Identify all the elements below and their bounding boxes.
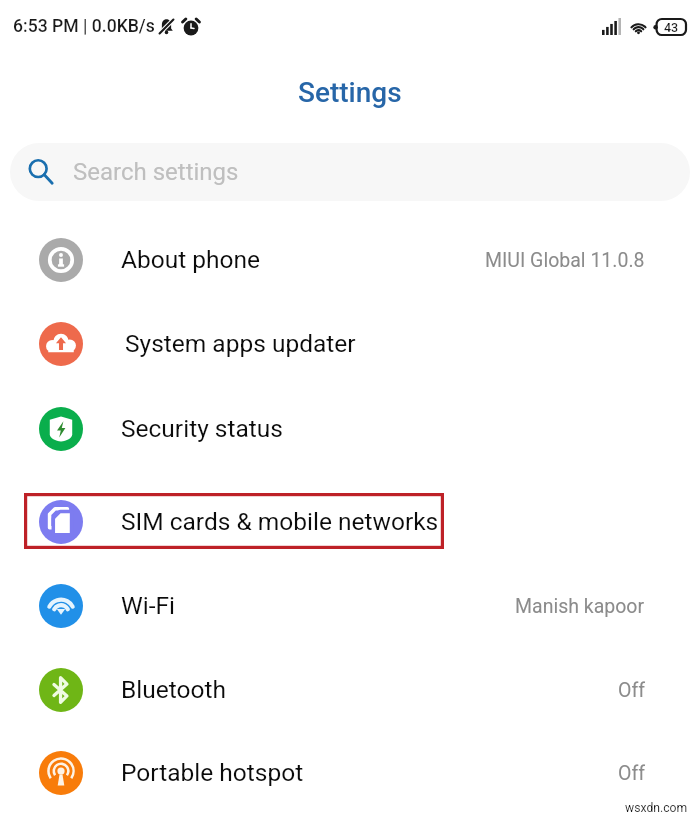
staticText: SIM cards & mobile networks — [121, 507, 439, 536]
button[interactable]: Portable hotspot — [0, 731, 700, 815]
button[interactable]: Security status — [0, 387, 700, 471]
staticText: About phone — [121, 245, 261, 274]
button[interactable]: Wi-Fi — [0, 564, 700, 648]
staticText: Portable hotspot — [121, 758, 304, 787]
staticText: Bluetooth — [121, 675, 226, 704]
staticText: Settings — [298, 76, 402, 109]
staticText: Wi-Fi — [121, 591, 175, 620]
button[interactable]: System apps updater — [0, 302, 700, 386]
staticText: 6:53 PM | 0.0KB/s — [13, 16, 155, 37]
staticText: Off — [618, 679, 645, 702]
staticText: MIUI Global 11.0.8 — [485, 249, 645, 272]
staticText: 43 — [664, 20, 679, 35]
button[interactable]: Search settings — [10, 143, 690, 201]
staticText: Manish kapoor — [515, 595, 645, 618]
staticText: Security status — [121, 414, 283, 443]
staticText: Search settings — [73, 158, 239, 186]
button[interactable]: Bluetooth — [0, 648, 700, 732]
button[interactable]: SIM cards & mobile networks — [0, 480, 700, 564]
staticText: wsxdn.com — [625, 801, 688, 815]
staticText: System apps updater — [125, 329, 356, 358]
button[interactable]: About phone — [0, 218, 700, 302]
staticText: Off — [618, 762, 645, 785]
